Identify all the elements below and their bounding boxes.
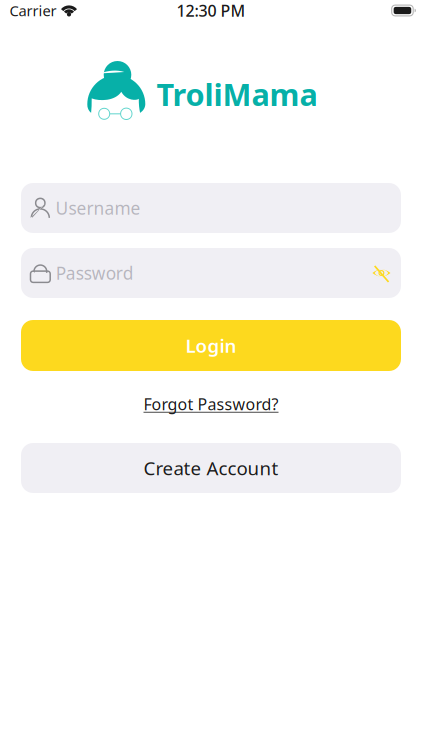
staticText: Forgot Password? [143, 393, 278, 415]
staticText: Carrier [9, 1, 56, 20]
button[interactable]: Forgot Password? [139, 393, 282, 415]
button[interactable]: Login [0, 320, 422, 371]
staticText: Create Account [143, 456, 278, 480]
staticText: TroliMama [156, 74, 317, 114]
staticText: Password [56, 261, 134, 284]
button[interactable]: Show password [372, 263, 391, 283]
staticText: 12:30 PM [176, 0, 245, 21]
button[interactable]: Create Account [0, 443, 422, 493]
staticText: Username [56, 196, 141, 219]
staticText: Login [185, 333, 236, 358]
